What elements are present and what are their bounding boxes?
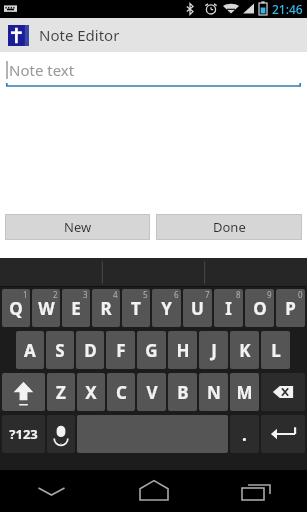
button[interactable]: S [46,331,74,369]
staticText: . [242,423,247,446]
button[interactable]: W [32,289,60,327]
button[interactable]: Recent apps [205,470,307,512]
button[interactable]: Done [156,214,302,240]
staticText: Z [56,381,66,404]
staticText: 2 [53,289,58,300]
button[interactable]: P [276,289,305,327]
button[interactable]: U [183,289,212,327]
button[interactable]: E [62,289,90,327]
staticText: P [285,297,296,320]
button[interactable]: N [199,373,228,411]
button[interactable]: G [137,331,166,369]
button[interactable]: Hide keyboard [0,470,103,512]
staticText: N [207,381,221,404]
staticText: Q [9,297,23,320]
staticText: Note text [9,60,75,80]
other: App icon [8,25,29,46]
staticText: 3 [83,289,88,300]
button[interactable]: ?123 [2,415,45,453]
button[interactable]: X [77,373,105,411]
staticText: A [24,339,36,362]
button[interactable]: V [137,373,166,411]
staticText: 5 [143,289,148,300]
staticText: B [177,381,189,404]
staticText: Y [161,297,172,320]
staticText: 6 [174,289,179,300]
staticText: T [131,297,141,320]
staticText: W [38,297,55,320]
staticText: O [253,297,267,320]
button[interactable]: L [261,331,290,369]
button[interactable]: C [107,373,135,411]
staticText: M [236,381,253,404]
staticText: F [116,339,126,362]
staticText: E [71,297,81,320]
button[interactable]: Backspace [261,373,305,411]
button[interactable]: H [168,331,197,369]
staticText: 7 [205,289,210,300]
button[interactable]: Shift [2,373,45,411]
button[interactable]: T [122,289,150,327]
button[interactable]: D [76,331,104,369]
button[interactable]: I [214,289,243,327]
button[interactable]: Voice input [47,415,75,453]
staticText: X [85,381,97,404]
staticText: 4 [113,289,118,300]
staticText: K [239,339,251,362]
button[interactable]: Note text [6,56,301,87]
staticText: ?123 [9,425,38,443]
staticText: D [84,339,97,362]
staticText: L [271,339,281,362]
staticText: 1 [23,289,28,300]
staticText: New [64,218,92,236]
button[interactable]: Enter [261,415,305,453]
staticText: V [146,381,158,404]
staticText: Note Editor [39,25,120,45]
staticText: 0 [298,289,303,300]
staticText: G [145,339,158,362]
button[interactable]: O [245,289,274,327]
button[interactable]: . [230,415,259,453]
button[interactable]: Home [103,470,205,512]
button[interactable]: Q [2,289,30,327]
staticText: 8 [236,289,241,300]
button[interactable]: J [199,331,228,369]
button[interactable]: M [230,373,259,411]
staticText: C [116,381,127,404]
staticText: H [176,339,190,362]
button[interactable]: R [92,289,120,327]
button[interactable]: K [230,331,259,369]
staticText: U [191,297,204,320]
staticText: 21:46 [272,1,303,17]
staticText: J [211,339,217,362]
button[interactable]: Z [47,373,75,411]
staticText: Done [213,218,246,236]
button[interactable]: Y [152,289,181,327]
button[interactable]: B [168,373,197,411]
button[interactable]: F [106,331,135,369]
button[interactable]: New [5,214,150,240]
staticText: S [55,339,65,362]
staticText: R [100,297,112,320]
button[interactable]: A [16,331,44,369]
staticText: I [225,297,232,320]
staticText: 9 [267,289,272,300]
